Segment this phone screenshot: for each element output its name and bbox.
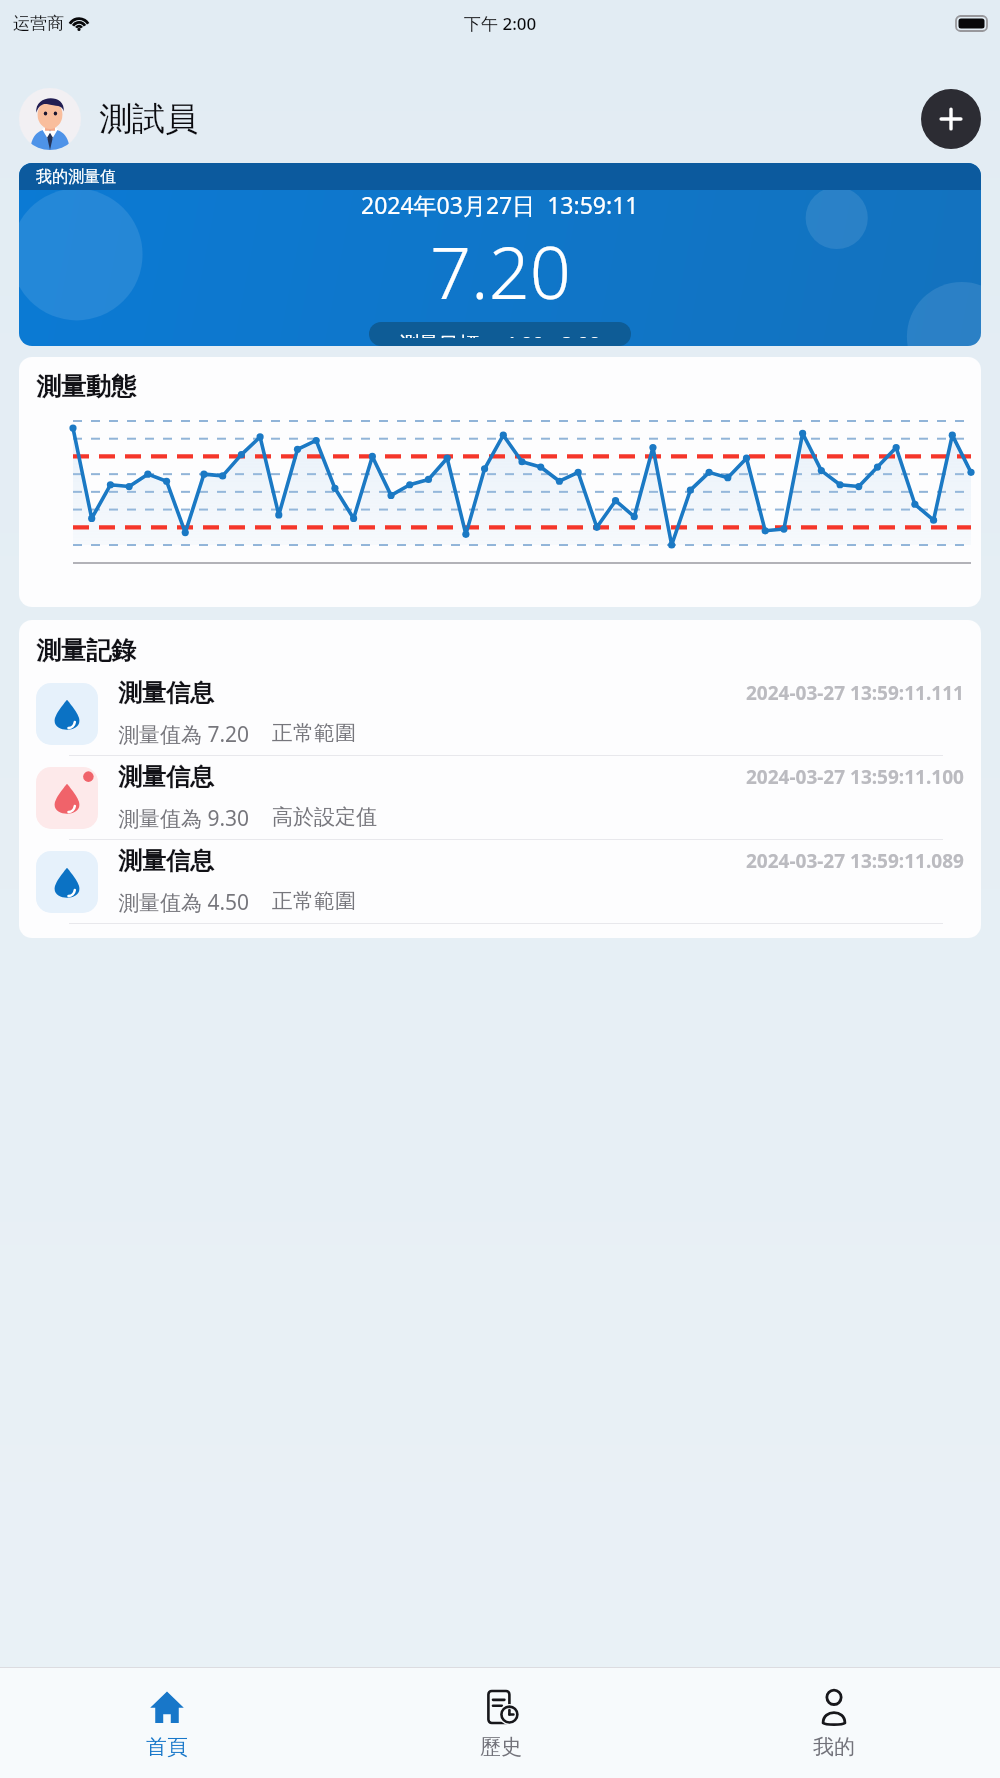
staticText: 測量記錄 (36, 635, 136, 666)
button[interactable]: 我的測量值 (19, 163, 981, 346)
button[interactable]: 測量信息 (19, 840, 981, 923)
button[interactable]: Add measurement (921, 89, 981, 149)
button[interactable]: 測試員 (99, 98, 198, 140)
staticText: 2024-03-27 13:59:11.111 (746, 680, 964, 706)
button[interactable]: 測量動態 (19, 357, 981, 607)
staticText: 正常範圍 (272, 888, 356, 914)
button[interactable]: 首頁 (0, 1668, 334, 1778)
staticText: 高於設定值 (272, 804, 377, 830)
button[interactable]: 測量目標： 4.00 - 8.00 (369, 322, 631, 346)
staticText: 測量信息 (118, 678, 214, 708)
staticText: 測量信息 (118, 762, 214, 792)
staticText: 測量值為 4.50 (118, 888, 250, 917)
staticText: 2024年03月27日 13:59:11 (361, 189, 639, 220)
staticText: 測量值為 7.20 (118, 720, 250, 749)
staticText: 下午 2:00 (464, 12, 537, 35)
button[interactable]: 歷史 (334, 1668, 667, 1778)
staticText: 歷史 (480, 1734, 522, 1760)
staticText: 7.20 (430, 222, 571, 320)
staticText: 运营商 (13, 13, 64, 34)
staticText: 2024-03-27 13:59:11.089 (746, 848, 964, 874)
button[interactable]: 測量信息 (19, 756, 981, 839)
staticText: 2024-03-27 13:59:11.100 (746, 764, 964, 790)
button[interactable]: 測量信息 (19, 672, 981, 755)
staticText: 我的測量值 (36, 167, 116, 187)
staticText: 首頁 (146, 1734, 188, 1760)
staticText: 測量目標： 4.00 - 8.00 (399, 330, 601, 338)
staticText: 測量信息 (118, 846, 214, 876)
staticText: 我的 (813, 1734, 855, 1760)
staticText: 正常範圍 (272, 720, 356, 746)
staticText: 測量值為 9.30 (118, 804, 250, 833)
staticText: 測量動態 (36, 371, 136, 402)
button[interactable]: 我的 (667, 1668, 1000, 1778)
button[interactable]: Profile avatar (19, 88, 81, 150)
